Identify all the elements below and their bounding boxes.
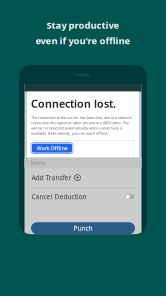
staticText: Stay productive — [46, 19, 119, 31]
staticText: Cancel Deduction — [31, 192, 86, 201]
staticText: The connection to the server has been lo… — [31, 115, 132, 136]
staticText: Connection lost. — [31, 96, 116, 111]
button[interactable]: Punch — [31, 222, 135, 234]
staticText: Work Offline — [36, 145, 67, 152]
button[interactable]: Cancel Deduction — [24, 188, 141, 205]
staticText: Punch — [73, 224, 92, 233]
button[interactable]: Work Offline — [32, 144, 72, 153]
button[interactable]: Add Transfer — [24, 168, 141, 188]
staticText: Add Transfer — [31, 173, 71, 182]
staticText: Name — [30, 159, 45, 166]
staticText: even if you're offline — [35, 34, 130, 47]
